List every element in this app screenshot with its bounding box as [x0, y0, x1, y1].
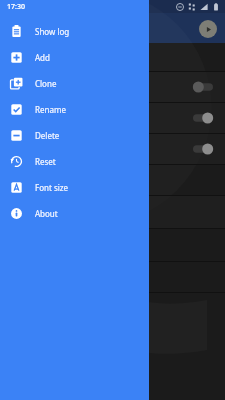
button[interactable]: Font size: [0, 174, 149, 200]
staticText: Font size: [35, 182, 69, 193]
button[interactable]: Rename: [0, 96, 149, 122]
button[interactable]: [0, 165, 225, 195]
button[interactable]: [0, 196, 225, 228]
button[interactable]: Toggle: [193, 113, 213, 123]
button[interactable]: [0, 43, 225, 71]
button[interactable]: [0, 229, 225, 261]
staticText: Clone: [35, 78, 57, 89]
staticText: Show log: [35, 26, 70, 37]
button[interactable]: Reset: [0, 148, 149, 174]
button[interactable]: Toggle: [193, 144, 213, 154]
staticText: Delete: [35, 130, 60, 141]
button[interactable]: Toggle: [193, 82, 213, 92]
staticText: About: [35, 208, 58, 219]
button[interactable]: Play: [199, 20, 217, 38]
staticText: Rename: [35, 104, 66, 115]
staticText: Reset: [35, 156, 56, 167]
button[interactable]: Toggle: [0, 72, 225, 102]
button[interactable]: Add: [0, 44, 149, 70]
button[interactable]: About: [0, 200, 149, 226]
button[interactable]: Delete: [0, 122, 149, 148]
button[interactable]: Clone: [0, 70, 149, 96]
staticText: 17:30: [7, 2, 25, 12]
button[interactable]: Show log: [0, 18, 149, 44]
button[interactable]: Toggle: [0, 103, 225, 133]
button[interactable]: [0, 262, 225, 292]
staticText: Add: [35, 52, 50, 63]
button[interactable]: Toggle: [0, 134, 225, 164]
